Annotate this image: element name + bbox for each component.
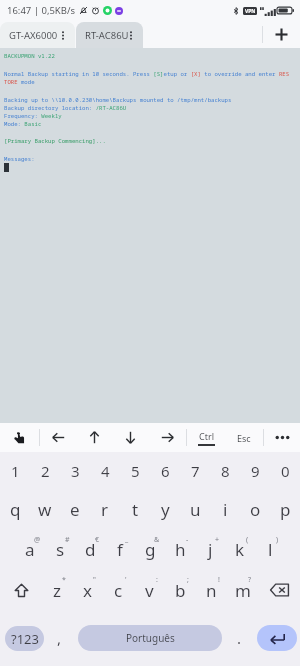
staticText: b xyxy=(175,579,186,602)
button[interactable]: 2 xyxy=(30,452,60,489)
staticText: n xyxy=(206,579,217,602)
staticText: f xyxy=(117,538,123,561)
staticText: 8 xyxy=(221,461,230,481)
staticText: GT-AX6000 xyxy=(9,29,58,42)
staticText: 1 xyxy=(11,461,20,481)
staticText: BACKUPMON v1.22 xyxy=(4,52,55,60)
staticText: y xyxy=(161,498,170,521)
button[interactable]: x xyxy=(72,570,103,610)
staticText: 16:47 | 0,5KB/s xyxy=(7,4,76,17)
button[interactable]: 7 xyxy=(180,452,210,489)
button[interactable]: Esc xyxy=(225,423,263,452)
staticText: Frequency: Weekly xyxy=(4,112,62,120)
staticText: : xyxy=(156,575,158,585)
staticText: ! xyxy=(218,575,220,585)
button[interactable]: ?123 xyxy=(5,626,44,651)
button[interactable]: u xyxy=(180,489,210,529)
staticText: & xyxy=(154,535,160,545)
button[interactable]: k xyxy=(225,529,255,570)
button[interactable]: e xyxy=(60,489,90,529)
button[interactable]: d xyxy=(75,529,105,570)
button[interactable]: More options xyxy=(264,423,300,452)
button[interactable]: New tab xyxy=(263,21,300,48)
staticText: " xyxy=(93,575,96,585)
button[interactable]: n xyxy=(196,570,227,610)
button[interactable]: z xyxy=(42,570,72,610)
button[interactable]: Period xyxy=(226,623,253,653)
staticText: z xyxy=(53,579,61,602)
staticText: 4 xyxy=(101,461,110,481)
staticText: - xyxy=(186,535,189,545)
button[interactable]: Ctrl xyxy=(187,423,225,452)
staticText: Backing up to \\10.0.0.230\home\Backups … xyxy=(4,96,232,104)
staticText: Messages: xyxy=(4,155,35,163)
staticText: 5 xyxy=(131,461,140,481)
button[interactable]: Backspace xyxy=(258,570,300,610)
staticText: @ xyxy=(34,535,41,545)
staticText: t xyxy=(132,498,139,521)
button[interactable]: Shift xyxy=(0,570,42,610)
button[interactable]: 3 xyxy=(60,452,90,489)
button[interactable]: w xyxy=(30,489,60,529)
button[interactable]: v xyxy=(134,570,165,610)
staticText: Português xyxy=(126,631,175,645)
button[interactable]: t xyxy=(120,489,150,529)
button[interactable]: 1 xyxy=(0,452,30,489)
staticText: e xyxy=(70,498,80,521)
button[interactable]: b xyxy=(165,570,196,610)
staticText: ; xyxy=(187,575,189,585)
button[interactable]: l xyxy=(255,529,285,570)
button[interactable]: f xyxy=(105,529,135,570)
button[interactable]: 8 xyxy=(210,452,240,489)
staticText: r xyxy=(101,498,109,521)
button[interactable]: Português xyxy=(78,625,222,651)
button[interactable]: g xyxy=(135,529,165,570)
button[interactable]: Up xyxy=(76,423,112,452)
button[interactable]: j xyxy=(195,529,225,570)
staticText: RT-AC86U xyxy=(85,29,129,42)
staticText: ) xyxy=(276,535,279,545)
staticText: j xyxy=(208,538,213,561)
button[interactable]: h xyxy=(165,529,195,570)
staticText: 3 xyxy=(71,461,80,481)
button[interactable]: y xyxy=(150,489,180,529)
button[interactable]: Comma xyxy=(46,623,73,653)
button[interactable]: 0 xyxy=(270,452,300,489)
button[interactable]: Enter xyxy=(257,625,297,651)
button[interactable]: Down xyxy=(112,423,149,452)
button[interactable]: GT-AX6000 xyxy=(0,22,75,48)
button[interactable]: m xyxy=(227,570,258,610)
button[interactable]: 5 xyxy=(120,452,150,489)
staticText: ' xyxy=(125,575,127,585)
staticText: * xyxy=(62,575,66,585)
staticText: l xyxy=(268,538,273,561)
button[interactable]: Touch mode xyxy=(0,423,39,452)
staticText: w xyxy=(38,498,52,521)
button[interactable]: p xyxy=(270,489,300,529)
staticText: u xyxy=(190,498,201,521)
staticText: ? xyxy=(248,575,252,585)
button[interactable]: 9 xyxy=(240,452,270,489)
button[interactable]: 6 xyxy=(150,452,180,489)
button[interactable]: 4 xyxy=(90,452,120,489)
button[interactable]: c xyxy=(103,570,134,610)
button[interactable]: o xyxy=(240,489,270,529)
button[interactable]: RT-AC86U xyxy=(76,22,143,48)
staticText: 0 xyxy=(281,461,290,481)
staticText: v xyxy=(145,579,154,602)
staticText: , xyxy=(57,628,62,648)
button[interactable]: a xyxy=(15,529,45,570)
staticText: ( xyxy=(246,535,249,545)
button[interactable]: s xyxy=(45,529,75,570)
staticText: g xyxy=(145,538,156,561)
staticText: a xyxy=(25,538,35,561)
button[interactable]: q xyxy=(0,489,30,529)
staticText: p xyxy=(280,498,291,521)
button[interactable]: r xyxy=(90,489,120,529)
staticText: k xyxy=(235,538,245,561)
staticText: € xyxy=(95,535,100,545)
button[interactable]: Left xyxy=(40,423,76,452)
button[interactable]: Right xyxy=(149,423,186,452)
button[interactable]: i xyxy=(210,489,240,529)
staticText: o xyxy=(250,498,261,521)
